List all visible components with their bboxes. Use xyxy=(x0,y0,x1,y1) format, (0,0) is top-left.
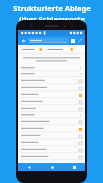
button[interactable]: Back xyxy=(20,37,27,44)
button[interactable] xyxy=(18,105,85,112)
button[interactable] xyxy=(28,38,68,43)
button[interactable] xyxy=(18,139,85,146)
button[interactable]: Home xyxy=(41,163,63,171)
button[interactable] xyxy=(18,77,85,84)
button[interactable] xyxy=(18,84,85,91)
button[interactable]: Back xyxy=(18,163,41,171)
button[interactable] xyxy=(18,132,85,139)
staticText: Strukturierte Ablage xyxy=(13,3,91,13)
button[interactable]: Save filter xyxy=(70,38,76,44)
button[interactable] xyxy=(18,118,85,125)
button[interactable]: More options xyxy=(77,38,83,44)
button[interactable] xyxy=(46,47,74,52)
button[interactable] xyxy=(18,146,85,153)
button[interactable] xyxy=(18,125,85,132)
button[interactable] xyxy=(21,47,43,52)
button[interactable] xyxy=(18,98,85,105)
button[interactable]: Recent apps xyxy=(63,163,85,171)
button[interactable] xyxy=(18,153,85,160)
staticText: über Schlagworte xyxy=(19,14,85,24)
button[interactable] xyxy=(18,91,85,98)
